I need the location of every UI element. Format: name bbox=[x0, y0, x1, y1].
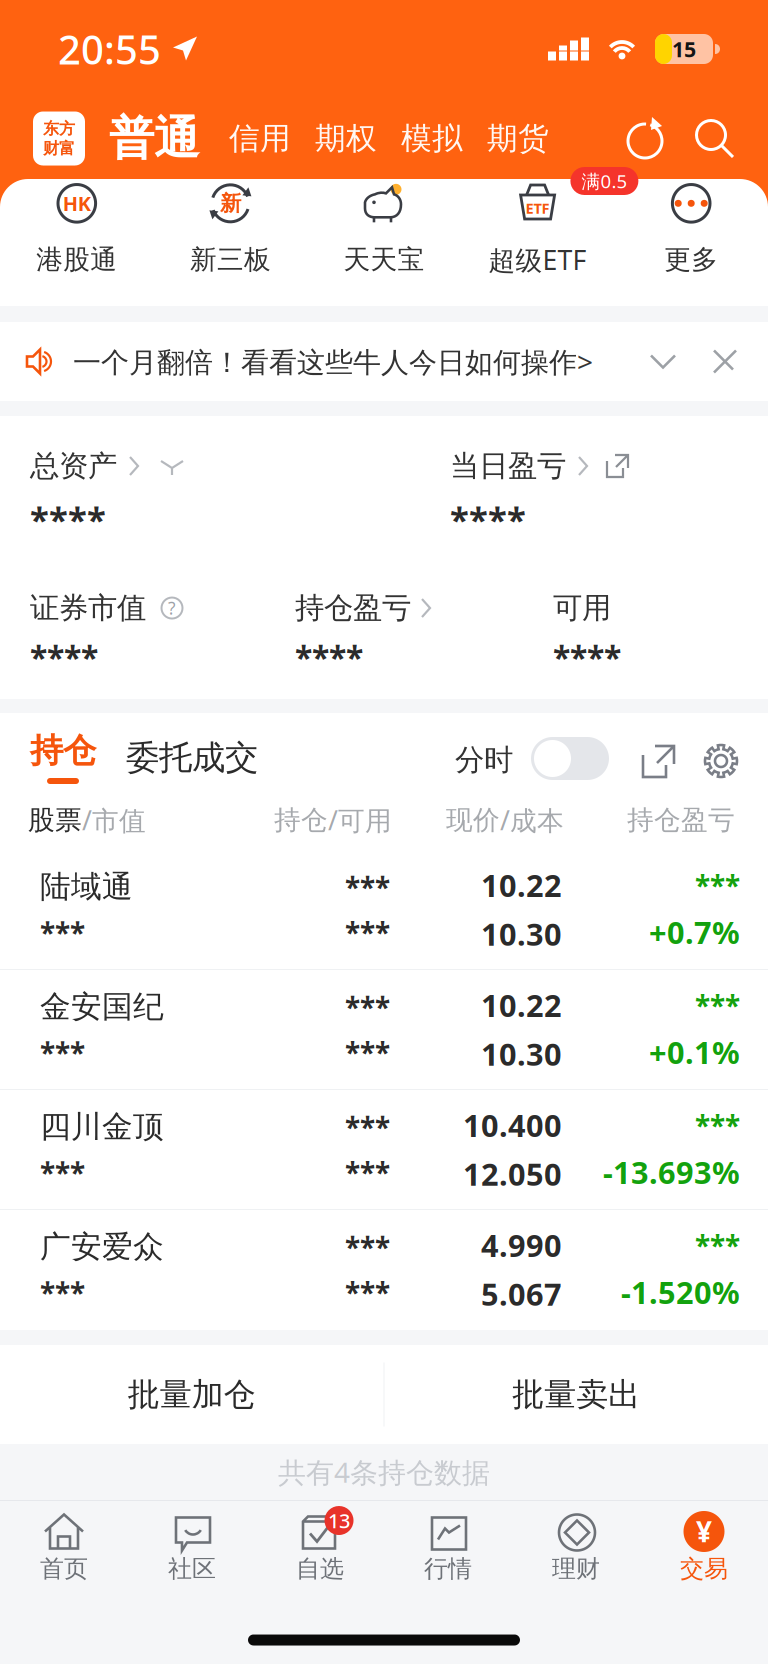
staticText: 理财 bbox=[552, 1554, 600, 1583]
staticText: 行情 bbox=[424, 1554, 472, 1583]
staticText: 首页 bbox=[40, 1554, 88, 1583]
button[interactable]: 普通 bbox=[85, 111, 199, 166]
button[interactable]: 信用 bbox=[199, 120, 291, 157]
staticText: *** bbox=[345, 988, 390, 1025]
staticText: *** bbox=[40, 1154, 85, 1191]
button[interactable]: 模拟 bbox=[377, 120, 463, 157]
button[interactable]: 期货 bbox=[463, 120, 549, 157]
button[interactable]: 广安爱众 bbox=[0, 1210, 768, 1329]
staticText: 财富 bbox=[43, 138, 75, 158]
staticText: 一个月翻倍！看看这些牛人今日如何操作> bbox=[73, 343, 593, 380]
button[interactable]: 东方 bbox=[33, 111, 85, 165]
button[interactable]: ¥ bbox=[640, 1501, 768, 1583]
staticText: 现价 bbox=[446, 804, 500, 836]
staticText: HK bbox=[63, 190, 91, 217]
button[interactable]: 一个月翻倍！看看这些牛人今日如何操作> bbox=[0, 322, 768, 401]
button[interactable]: Toggle time-share view bbox=[513, 737, 609, 790]
staticText: 当日盈亏 bbox=[450, 448, 566, 484]
button[interactable]: 13 bbox=[256, 1501, 384, 1583]
staticText: +0.1% bbox=[649, 1032, 740, 1072]
button[interactable]: 四川金顶 bbox=[0, 1090, 768, 1209]
staticText: ETF bbox=[526, 198, 550, 218]
button[interactable]: ETF bbox=[461, 181, 614, 277]
staticText: 10.22 bbox=[481, 865, 562, 905]
button[interactable]: 新 bbox=[154, 182, 307, 276]
staticText: 天天宝 bbox=[343, 243, 424, 276]
staticText: 超级ETF bbox=[489, 242, 587, 277]
staticText: 港股通 bbox=[36, 243, 117, 276]
staticText: 总资产 bbox=[30, 448, 117, 484]
button[interactable]: Search bbox=[666, 118, 735, 159]
staticText: *** bbox=[695, 986, 740, 1024]
staticText: **** bbox=[30, 636, 98, 678]
staticText: 分时 bbox=[455, 742, 513, 778]
button[interactable]: 期权 bbox=[291, 120, 377, 157]
staticText: *** bbox=[345, 1108, 390, 1145]
staticText: ¥ bbox=[696, 1513, 712, 1550]
staticText: *** bbox=[695, 1106, 740, 1144]
staticText: 社区 bbox=[168, 1554, 216, 1583]
button[interactable]: Open in new window bbox=[609, 744, 676, 790]
staticText: 5.067 bbox=[481, 1273, 562, 1314]
button[interactable]: 金安国纪 bbox=[0, 970, 768, 1089]
staticText: 20:55 bbox=[58, 22, 161, 75]
staticText: /成本 bbox=[500, 802, 564, 838]
button[interactable]: 行情 bbox=[384, 1501, 512, 1583]
staticText: 自选 bbox=[296, 1554, 344, 1583]
staticText: 四川金顶 bbox=[40, 1108, 164, 1146]
button[interactable]: 理财 bbox=[512, 1501, 640, 1583]
staticText: +0.7% bbox=[649, 912, 740, 952]
staticText: 10.30 bbox=[481, 913, 562, 954]
staticText: 10.22 bbox=[481, 985, 562, 1025]
staticText: -1.520% bbox=[621, 1272, 740, 1312]
button[interactable]: Refresh bbox=[624, 117, 666, 160]
button[interactable]: 陆域通 bbox=[0, 850, 768, 969]
staticText: *** bbox=[40, 1274, 85, 1311]
button[interactable]: 社区 bbox=[128, 1501, 256, 1583]
staticText: 交易 bbox=[680, 1554, 728, 1583]
staticText: *** bbox=[345, 1033, 390, 1071]
staticText: 批量卖出 bbox=[512, 1375, 640, 1414]
staticText: *** bbox=[695, 866, 740, 904]
staticText: 东方 bbox=[43, 119, 75, 138]
staticText: *** bbox=[40, 1034, 85, 1071]
staticText: 持仓 bbox=[30, 730, 96, 771]
staticText: /市值 bbox=[82, 802, 146, 838]
staticText: 持仓盈亏 bbox=[627, 804, 735, 836]
staticText: 广安爱众 bbox=[40, 1228, 164, 1266]
button[interactable]: 批量卖出 bbox=[384, 1345, 768, 1444]
staticText: **** bbox=[295, 636, 363, 678]
button[interactable]: 更多 bbox=[614, 182, 768, 276]
staticText: *** bbox=[40, 914, 85, 951]
button[interactable]: HK bbox=[0, 182, 154, 276]
staticText: *** bbox=[345, 1273, 390, 1311]
staticText: 15 bbox=[672, 35, 696, 63]
staticText: -13.693% bbox=[603, 1152, 740, 1192]
button[interactable]: 持仓 bbox=[30, 730, 96, 790]
staticText: 陆域通 bbox=[40, 868, 133, 906]
staticText: 信用 bbox=[229, 120, 291, 157]
button[interactable]: 委托成交 bbox=[96, 737, 258, 790]
staticText: *** bbox=[345, 1153, 390, 1191]
staticText: **** bbox=[553, 636, 621, 678]
staticText: 期货 bbox=[487, 120, 549, 157]
staticText: 普通 bbox=[109, 111, 199, 166]
staticText: *** bbox=[345, 913, 390, 951]
staticText: 批量加仓 bbox=[128, 1375, 256, 1414]
staticText: 4.990 bbox=[481, 1225, 562, 1265]
button[interactable]: 首页 bbox=[0, 1501, 128, 1583]
staticText: 新三板 bbox=[190, 243, 271, 276]
staticText: 期权 bbox=[315, 120, 377, 157]
button[interactable]: 批量加仓 bbox=[0, 1345, 383, 1444]
staticText: 持仓盈亏 bbox=[295, 590, 411, 626]
staticText: 更多 bbox=[664, 243, 718, 276]
staticText: /可用 bbox=[328, 802, 392, 838]
staticText: 委托成交 bbox=[126, 737, 258, 778]
button[interactable]: 天天宝 bbox=[307, 182, 461, 276]
button[interactable]: Settings bbox=[676, 742, 740, 790]
staticText: **** bbox=[30, 496, 106, 542]
staticText: 10.400 bbox=[463, 1105, 562, 1145]
staticText: 12.050 bbox=[463, 1153, 562, 1194]
staticText: 新 bbox=[220, 190, 241, 216]
staticText: *** bbox=[345, 868, 390, 905]
